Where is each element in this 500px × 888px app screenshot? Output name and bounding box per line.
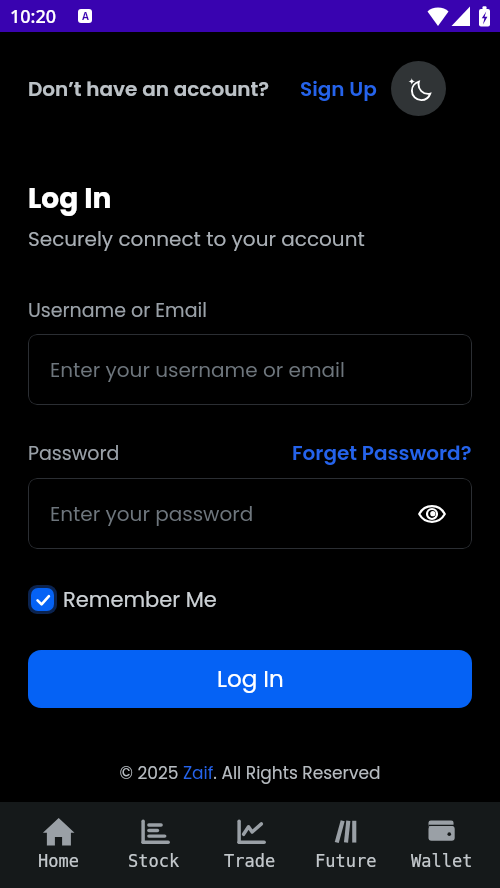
button[interactable]: Future	[298, 802, 394, 888]
staticText: Don’t have an account?	[28, 75, 270, 103]
staticText: Trade	[224, 851, 276, 871]
staticText: Log In	[28, 179, 112, 218]
staticText: Enter your username or email	[50, 356, 345, 384]
button[interactable]: Forget Password?	[292, 439, 472, 467]
button[interactable]: Show password	[417, 499, 447, 529]
button[interactable]: Stock	[106, 802, 202, 888]
button[interactable]: Wallet	[394, 802, 490, 888]
staticText: Remember Me	[63, 585, 217, 614]
button[interactable]: Remember Me	[28, 584, 217, 615]
staticText: Wallet	[411, 851, 473, 871]
button[interactable]: Sign Up	[300, 75, 377, 103]
staticText: Sign Up	[300, 75, 377, 103]
staticText: A	[82, 9, 89, 23]
button[interactable]: Toggle dark mode	[391, 61, 446, 116]
staticText: Enter your password	[50, 500, 254, 528]
button[interactable]: Enter your password	[28, 478, 472, 549]
staticText: Username or Email	[28, 297, 207, 324]
button[interactable]: Home	[10, 802, 106, 888]
staticText: Password	[28, 440, 120, 467]
staticText: Stock	[128, 851, 180, 871]
button[interactable]: Trade	[202, 802, 298, 888]
staticText: Future	[315, 851, 377, 871]
staticText: Home	[38, 851, 79, 871]
staticText: Forget Password?	[292, 439, 472, 467]
staticText: Log In	[217, 663, 284, 695]
button[interactable]: Log In	[28, 650, 472, 708]
staticText: 10:20	[10, 4, 57, 29]
staticText: © 2025 Zaif. All Rights Reserved	[119, 761, 381, 785]
button[interactable]: Enter your username or email	[28, 334, 472, 405]
staticText: Securely connect to your account	[28, 225, 365, 253]
